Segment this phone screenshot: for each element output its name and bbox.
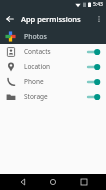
button[interactable]: Storage permission toggle — [86, 91, 102, 103]
button[interactable]: Recent apps — [76, 174, 92, 190]
button[interactable]: Phone — [0, 74, 106, 89]
button[interactable]: Storage — [0, 89, 106, 104]
button[interactable]: More options — [92, 12, 105, 26]
button[interactable]: Contacts permission toggle — [86, 46, 102, 58]
staticText: Phone — [24, 77, 86, 86]
staticText: Location — [24, 62, 86, 71]
staticText: Photos — [24, 32, 47, 42]
button[interactable]: Location — [0, 59, 106, 74]
staticText: Contacts — [24, 47, 86, 56]
staticText: App permissions — [21, 14, 92, 24]
button[interactable]: Photos — [0, 29, 106, 44]
button[interactable]: Phone permission toggle — [86, 76, 102, 88]
staticText: Storage — [24, 92, 86, 101]
button[interactable]: Contacts — [0, 44, 106, 59]
button[interactable]: Location permission toggle — [86, 61, 102, 73]
staticText: 5:43 — [93, 1, 103, 8]
button[interactable]: Back — [15, 174, 31, 190]
button[interactable]: Home — [45, 174, 61, 190]
button[interactable]: Navigate up — [3, 12, 17, 26]
